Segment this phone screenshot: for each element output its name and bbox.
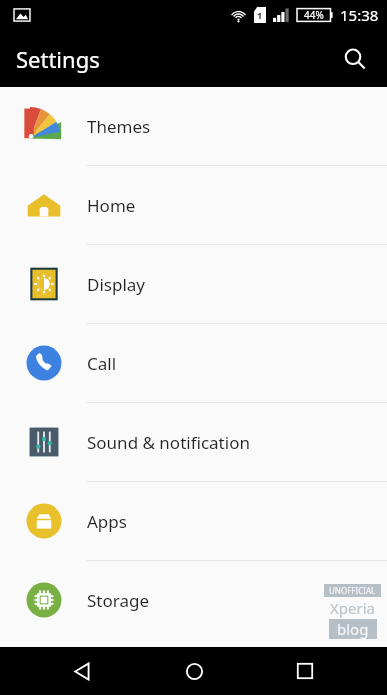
staticText: 44% [304, 8, 324, 22]
button[interactable]: Display [0, 245, 387, 324]
staticText: Storage [87, 589, 150, 612]
staticText: UNOFFICIAL [329, 585, 376, 596]
button[interactable]: Sound & notification [0, 403, 387, 482]
staticText: Sound & notification [87, 431, 250, 454]
button[interactable]: Back [52, 647, 112, 695]
staticText: Call [87, 352, 117, 375]
button[interactable]: Themes [0, 87, 387, 166]
staticText: blog [337, 619, 369, 639]
button[interactable]: Home [0, 166, 387, 245]
button[interactable]: Storage [0, 561, 387, 640]
button[interactable]: Recents [275, 647, 335, 695]
button[interactable]: Search [331, 35, 379, 83]
staticText: 1 [257, 9, 263, 21]
staticText: Themes [87, 115, 151, 138]
button[interactable]: Call [0, 324, 387, 403]
staticText: Settings [16, 44, 100, 74]
staticText: 15:38 [340, 5, 379, 25]
button[interactable]: Apps [0, 482, 387, 561]
staticText: Xperia [330, 598, 375, 618]
staticText: Display [87, 273, 145, 296]
staticText: Home [87, 194, 136, 217]
staticText: Apps [87, 510, 127, 533]
button[interactable]: Home [164, 647, 224, 695]
